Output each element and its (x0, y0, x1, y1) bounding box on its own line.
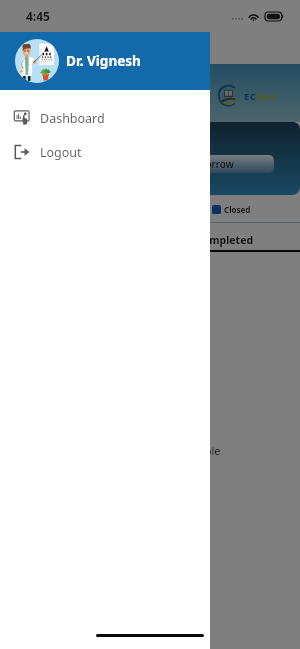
button[interactable]: Logout (0, 136, 210, 168)
button[interactable]: Tomorrow (150, 155, 274, 173)
staticText: doc (257, 90, 276, 103)
other: Dashboard (14, 110, 30, 126)
staticText: 4:45 (26, 8, 50, 24)
staticText: Dashboard (40, 110, 105, 127)
staticText: Tomorrow (185, 157, 234, 171)
staticText: Dr. Vignesh (66, 52, 141, 70)
staticText: Closed (224, 204, 251, 215)
staticText: No Data Available (129, 443, 221, 458)
staticText: Completed (196, 233, 254, 247)
staticText: EC (244, 90, 257, 103)
other: Logout (14, 144, 30, 160)
button[interactable]: Dashboard (0, 102, 210, 134)
staticText: Logout (40, 144, 82, 161)
